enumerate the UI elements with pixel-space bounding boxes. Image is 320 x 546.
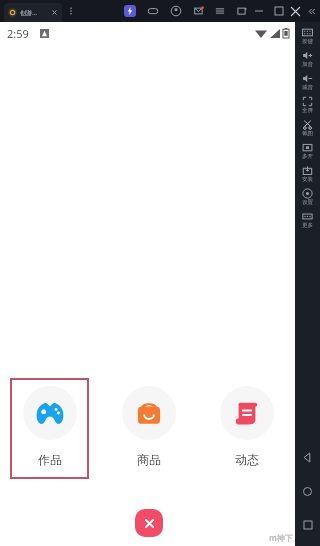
staticText: 安装 [302,176,313,183]
button[interactable]: Back [295,440,320,474]
button[interactable]: Close window [288,4,302,18]
staticText: 按键 [302,38,313,45]
button[interactable]: 设置 [295,187,320,207]
staticText: 多开 [302,153,313,160]
button[interactable]: 作品 [10,378,89,479]
button[interactable]: Close tab [51,9,58,16]
staticText: 作品 [38,452,62,467]
staticText: 加音 [302,61,313,68]
staticText: 2:59 [7,26,29,41]
staticText: 设置 [302,199,313,206]
button[interactable]: Toolbar action [145,3,161,19]
button[interactable]: Toolbar action [168,3,184,19]
button[interactable]: 更多 [295,210,320,230]
button[interactable]: Collapse [304,4,318,18]
button[interactable]: Minimize [252,4,266,18]
button[interactable]: 减音 [295,72,320,92]
button[interactable]: 商品 [109,378,188,479]
staticText: m神下 [269,532,293,543]
button[interactable]: Toolbar action [191,3,207,19]
button[interactable]: 截图 [295,118,320,138]
button[interactable]: 多开 [295,141,320,161]
button[interactable]: Recents [295,508,320,542]
staticText: 更多 [302,222,313,229]
staticText: 商品 [137,452,161,467]
button[interactable]: 加音 [295,49,320,69]
staticText: 创游... [20,9,37,17]
staticText: 减音 [302,84,313,91]
button[interactable]: Home [295,474,320,508]
button[interactable]: 创游... [4,3,62,22]
button[interactable]: Menu [64,4,78,18]
button[interactable]: Toolbar action [234,3,250,19]
button[interactable]: Toolbar action [212,3,228,19]
button[interactable]: Close [135,509,163,537]
button[interactable]: 安装 [295,164,320,184]
button[interactable]: Maximize [272,4,286,18]
button[interactable]: 按键 [295,26,320,46]
staticText: 截图 [302,130,313,137]
button[interactable]: Toolbar action [122,3,138,19]
staticText: 全屏 [302,107,313,114]
button[interactable]: 动态 [207,378,286,479]
button[interactable]: 全屏 [295,95,320,115]
staticText: 动态 [235,452,259,467]
